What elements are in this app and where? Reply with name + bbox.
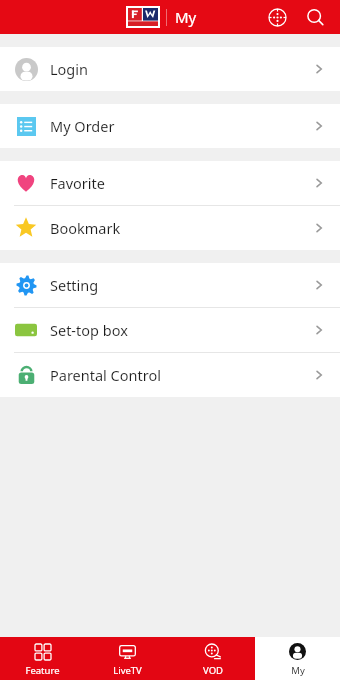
- button[interactable]: Login: [0, 47, 340, 91]
- staticText: VOD: [203, 664, 223, 677]
- button[interactable]: Feature: [0, 637, 85, 680]
- staticText: Bookmark: [50, 218, 121, 238]
- button[interactable]: Parental Control: [0, 353, 340, 397]
- button[interactable]: Setting: [0, 263, 340, 307]
- staticText: Set-top box: [50, 320, 128, 340]
- staticText: My: [291, 664, 305, 677]
- staticText: Login: [50, 59, 88, 79]
- staticText: Feature: [25, 664, 60, 677]
- staticText: My: [175, 7, 197, 27]
- staticText: LiveTV: [113, 664, 142, 677]
- button[interactable]: Remote control: [260, 0, 294, 34]
- button[interactable]: Favorite: [0, 161, 340, 205]
- button[interactable]: Search: [298, 0, 332, 34]
- button[interactable]: Set-top box: [0, 308, 340, 352]
- staticText: Parental Control: [50, 365, 161, 385]
- button[interactable]: My Order: [0, 104, 340, 148]
- button[interactable]: Bookmark: [0, 206, 340, 250]
- staticText: Setting: [50, 275, 99, 295]
- button[interactable]: VOD: [170, 637, 255, 680]
- staticText: My Order: [50, 116, 115, 136]
- button[interactable]: My: [255, 637, 340, 680]
- staticText: Favorite: [50, 173, 105, 193]
- button[interactable]: LiveTV: [85, 637, 170, 680]
